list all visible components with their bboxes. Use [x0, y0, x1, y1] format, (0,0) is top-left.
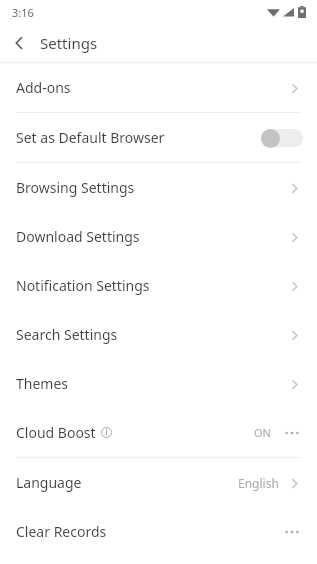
staticText: Set as Default Browser: [16, 128, 165, 147]
staticText: Cloud Boost: [16, 423, 96, 442]
other: Open: [285, 277, 303, 295]
staticText: Settings: [40, 33, 98, 53]
button[interactable]: More options: [281, 422, 303, 444]
staticText: English: [238, 475, 279, 491]
button[interactable]: Add-ons: [0, 63, 317, 112]
staticText: Download Settings: [16, 227, 140, 246]
button[interactable]: Download Settings: [0, 212, 317, 261]
staticText: 3:16: [12, 5, 34, 20]
staticText: Language: [16, 473, 82, 492]
button[interactable]: Browsing Settings: [0, 163, 317, 212]
staticText: Browsing Settings: [16, 178, 135, 197]
other: Open: [285, 179, 303, 197]
other: Open: [285, 375, 303, 393]
staticText: ON: [254, 425, 271, 440]
staticText: Themes: [16, 374, 69, 393]
button[interactable]: Cloud Boost: [0, 408, 317, 457]
button[interactable]: Notification Settings: [0, 261, 317, 310]
staticText: Notification Settings: [16, 276, 150, 295]
button[interactable]: Set as Default Browser: [0, 113, 317, 162]
staticText: Search Settings: [16, 325, 118, 344]
other: Open: [285, 228, 303, 246]
other: Open: [285, 474, 303, 492]
button[interactable]: More options: [281, 521, 303, 543]
button[interactable]: Language: [0, 458, 317, 507]
button[interactable]: Themes: [0, 359, 317, 408]
other: Open: [285, 79, 303, 97]
staticText: Clear Records: [16, 522, 107, 541]
other: Open: [285, 326, 303, 344]
staticText: Add-ons: [16, 78, 71, 97]
button[interactable]: Clear Records: [0, 507, 317, 556]
button[interactable]: Back: [0, 24, 38, 62]
button[interactable]: Set as Default Browser toggle: [261, 128, 303, 148]
button[interactable]: Search Settings: [0, 310, 317, 359]
